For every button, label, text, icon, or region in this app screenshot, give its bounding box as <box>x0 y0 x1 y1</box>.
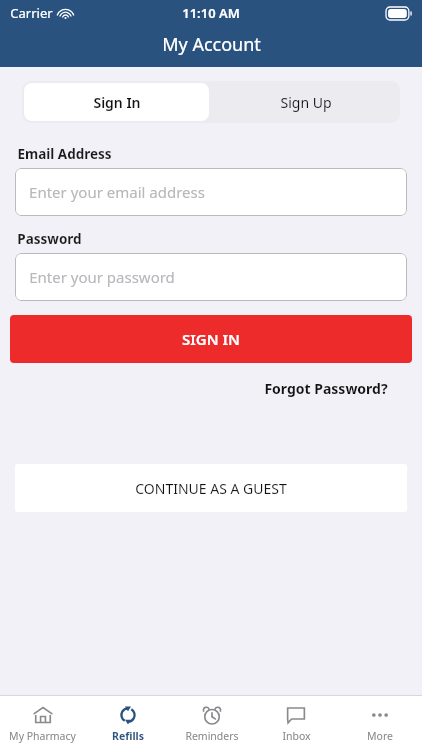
staticText: Enter your password <box>29 267 175 287</box>
button[interactable]: Inbox <box>254 696 338 750</box>
staticText: More <box>367 729 393 743</box>
button[interactable]: Enter your password <box>15 253 407 301</box>
staticText: Enter your email address <box>29 182 205 202</box>
staticText: Sign In <box>93 93 141 112</box>
staticText: My Pharmacy <box>9 729 76 743</box>
staticText: 11:10 AM <box>182 4 240 22</box>
staticText: Refills <box>112 729 144 743</box>
staticText: CONTINUE AS A GUEST <box>135 479 287 498</box>
button[interactable]: Refills <box>85 696 170 750</box>
button[interactable]: Reminders <box>170 696 254 750</box>
staticText: Inbox <box>282 729 311 743</box>
button[interactable]: My Pharmacy <box>0 696 85 750</box>
staticText: Email Address <box>17 145 112 163</box>
staticText: My Account <box>162 32 261 57</box>
staticText: Reminders <box>185 729 239 743</box>
button[interactable]: More <box>338 696 422 750</box>
button[interactable]: Forgot Password? <box>260 375 392 402</box>
button[interactable]: SIGN IN <box>10 315 412 363</box>
staticText: Password <box>17 230 82 248</box>
button[interactable]: CONTINUE AS A GUEST <box>15 464 407 512</box>
staticText: Carrier <box>10 4 53 22</box>
staticText: Forgot Password? <box>264 379 388 398</box>
staticText: Sign Up <box>280 93 332 112</box>
button[interactable]: Sign In <box>24 83 209 121</box>
button[interactable]: Enter your email address <box>15 168 407 216</box>
button[interactable]: Sign Up <box>211 81 400 123</box>
staticText: SIGN IN <box>182 329 240 349</box>
